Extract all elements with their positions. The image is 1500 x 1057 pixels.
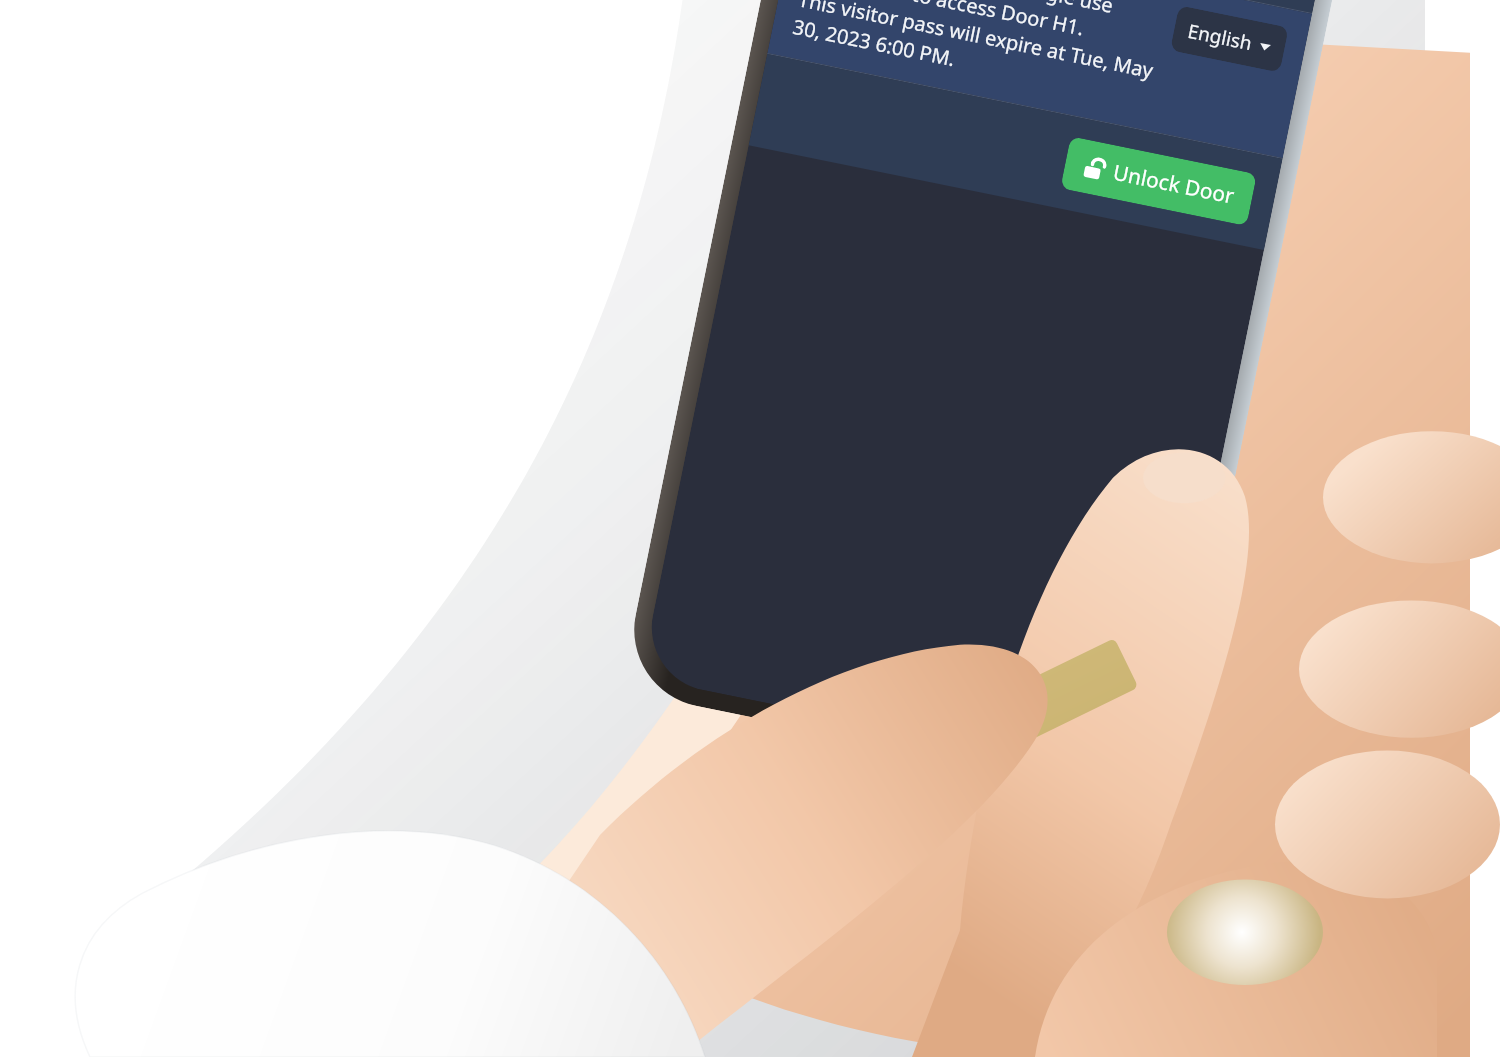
staticText: English xyxy=(1186,18,1255,56)
button[interactable]: English xyxy=(1170,5,1289,73)
staticText: Unlock Door xyxy=(1111,158,1237,211)
button[interactable]: Unlock Door xyxy=(1060,136,1257,226)
staticText: Huy Lai has sent you a single use visito… xyxy=(790,0,1169,112)
